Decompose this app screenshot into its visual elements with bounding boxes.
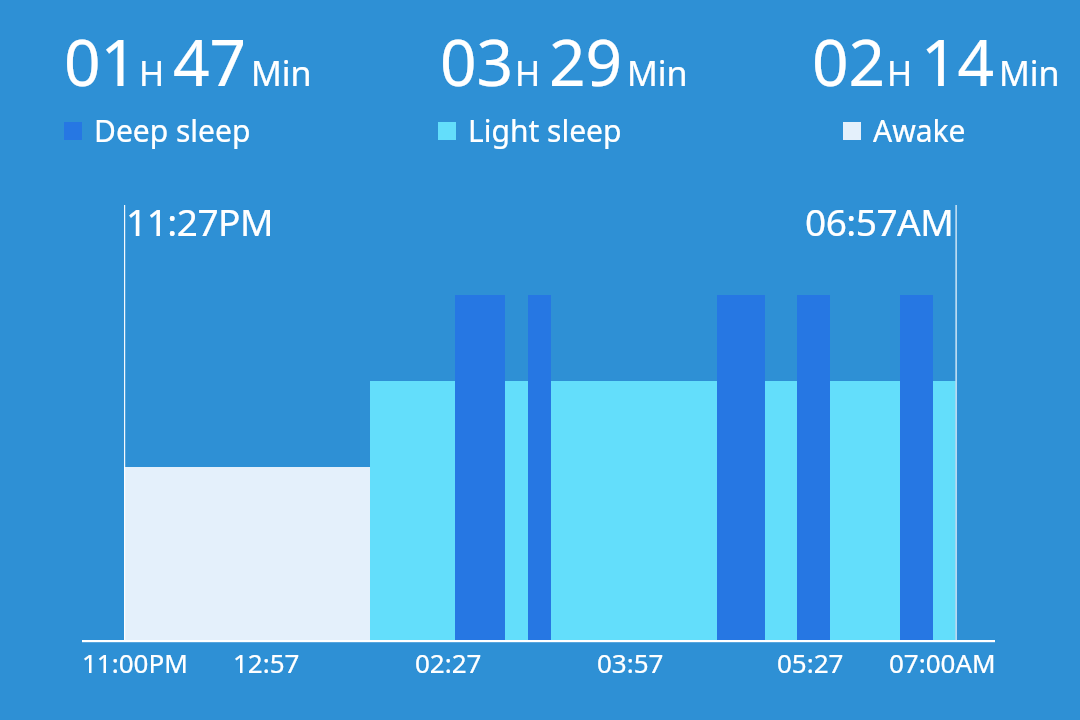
button[interactable]: Awake bbox=[843, 110, 966, 151]
staticText: 14 bbox=[921, 18, 995, 105]
staticText: 03:57 bbox=[597, 645, 664, 680]
staticText: Light sleep bbox=[468, 110, 622, 151]
staticText: 29 bbox=[549, 18, 623, 105]
staticText: 11:00PM bbox=[82, 645, 188, 680]
staticText: 06:57AM bbox=[805, 196, 954, 246]
staticText: 03 bbox=[440, 18, 514, 105]
staticText: H bbox=[139, 50, 165, 96]
staticText: 11:27PM bbox=[126, 196, 274, 246]
staticText: 05:27 bbox=[777, 645, 844, 680]
staticText: 02 bbox=[812, 18, 886, 105]
staticText: 12:57 bbox=[233, 645, 300, 680]
button[interactable]: Deep sleep bbox=[64, 110, 251, 151]
staticText: Deep sleep bbox=[94, 110, 251, 151]
staticText: Awake bbox=[873, 110, 966, 151]
staticText: H bbox=[515, 50, 541, 96]
staticText: 02:27 bbox=[415, 645, 482, 680]
staticText: Min bbox=[999, 50, 1060, 96]
staticText: Min bbox=[627, 50, 688, 96]
staticText: 07:00AM bbox=[889, 645, 996, 680]
staticText: 47 bbox=[173, 18, 247, 105]
staticText: Min bbox=[251, 50, 312, 96]
button[interactable]: Light sleep bbox=[438, 110, 622, 151]
staticText: H bbox=[887, 50, 913, 96]
staticText: 01 bbox=[64, 18, 138, 105]
